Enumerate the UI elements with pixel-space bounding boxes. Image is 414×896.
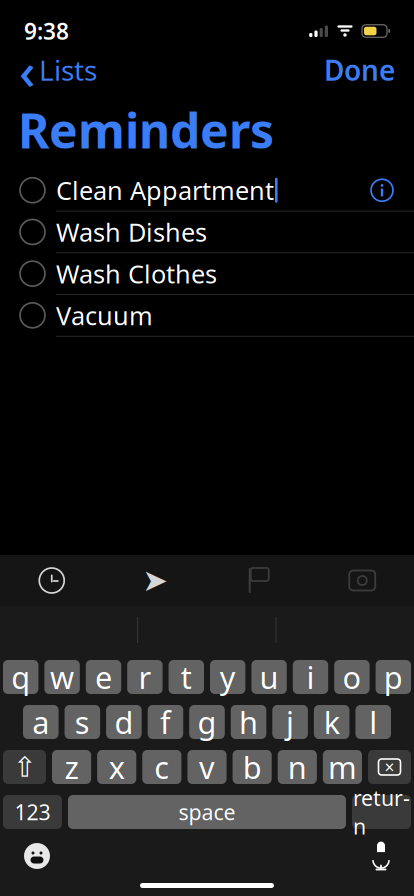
staticText: b [243,747,262,787]
staticText: g [197,702,216,742]
staticText: j [286,702,294,742]
button[interactable]: w [44,660,80,694]
staticText: m [328,747,357,787]
staticText: q [11,657,30,697]
button[interactable]: x [97,750,136,784]
staticText: ‹ [19,36,36,104]
button[interactable]: b [233,750,272,784]
staticText: Lists [39,51,97,89]
button[interactable]: p [376,660,411,694]
staticText: 123 [14,798,50,826]
button[interactable]: k [314,705,349,739]
staticText: x [109,747,125,787]
staticText: z [65,747,79,787]
button[interactable]: j [272,705,308,739]
button[interactable]: d [106,705,142,739]
button[interactable]: q [3,660,38,694]
button[interactable]: r [127,660,163,694]
button[interactable]: g [189,705,225,739]
staticText: w [50,657,74,697]
staticText: y [220,657,236,697]
button[interactable]: Remind me at a time [0,555,103,606]
button[interactable]: h [231,705,266,739]
button[interactable]: o [334,660,370,694]
staticText: o [342,657,361,697]
staticText: h [239,702,258,742]
button[interactable]: Done [318,43,401,97]
staticText: k [324,702,340,742]
button[interactable]: m [323,750,362,784]
staticText: Clean Appartment [56,173,274,207]
staticText: e [95,657,112,697]
staticText: n [288,747,307,787]
staticText: Vacuum [56,298,153,332]
staticText: Done [324,51,395,89]
button[interactable]: return [352,795,411,829]
button[interactable]: Remind me at a location [103,555,207,606]
button[interactable]: space [68,795,346,829]
staticText: space [178,798,235,826]
staticText: p [384,657,403,697]
button[interactable]: Emoji [13,832,61,880]
staticText: r [138,657,151,697]
button[interactable]: v [187,750,226,784]
staticText: v [199,747,215,787]
button[interactable]: n [278,750,317,784]
button[interactable]: t [169,660,204,694]
button[interactable]: Vacuum [0,295,414,336]
button[interactable]: e [86,660,121,694]
button[interactable]: z [52,750,91,784]
button[interactable]: Clean Appartment [0,170,414,211]
button[interactable]: a [23,705,59,739]
staticText: f [160,702,171,742]
button[interactable]: i [293,660,328,694]
button[interactable]: Wash Clothes [0,253,414,295]
button[interactable]: Add photo [310,555,414,606]
button[interactable]: y [210,660,245,694]
button[interactable]: s [65,705,100,739]
staticText: return [353,784,410,840]
staticText: ➤ [142,563,168,598]
button[interactable]: u [251,660,287,694]
staticText: Reminders [18,98,274,162]
staticText: 9:38 [24,16,69,46]
staticText: i [306,657,314,697]
button[interactable]: f [148,705,183,739]
button[interactable]: ‹ [13,32,103,108]
staticText: Wash Dishes [56,215,207,249]
staticText: a [32,702,49,742]
staticText: u [260,657,279,697]
staticText: c [154,747,169,787]
staticText: × [384,755,394,778]
button[interactable]: 123 [3,795,62,829]
button[interactable]: Dictate [361,831,401,881]
button[interactable]: Shift [3,750,46,784]
staticText: l [369,702,377,742]
staticText: s [75,702,90,742]
button[interactable]: l [355,705,391,739]
staticText: t [181,657,192,697]
button[interactable]: Wash Dishes [0,211,414,253]
button[interactable]: Delete [368,750,411,784]
staticText: d [114,702,133,742]
staticText: Wash Clothes [56,257,217,290]
staticText: ⇧ [13,751,36,783]
button[interactable]: Flag [207,555,310,606]
button[interactable]: c [142,750,181,784]
